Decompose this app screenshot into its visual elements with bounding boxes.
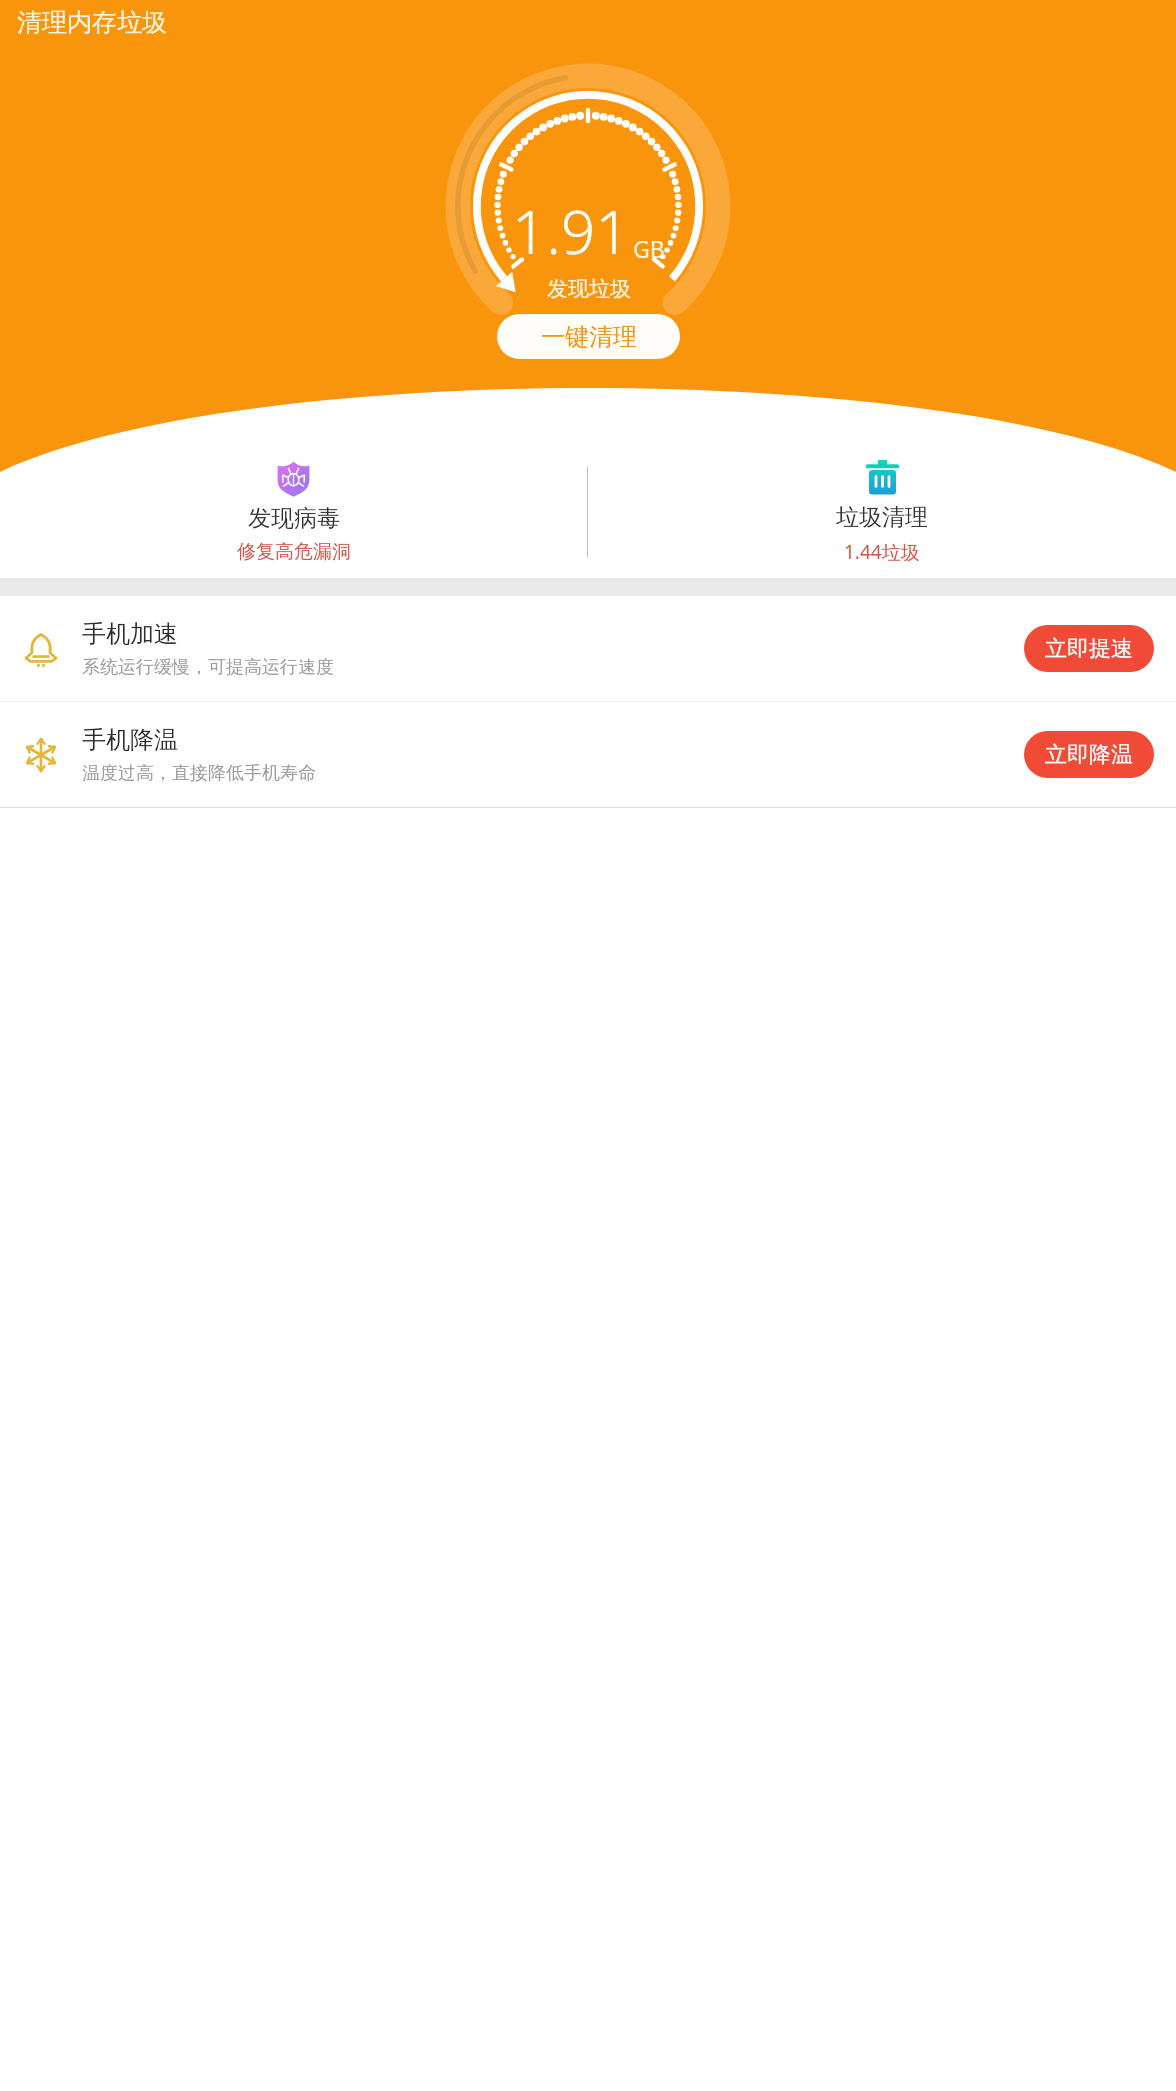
button[interactable]: Virus found (0, 459, 587, 564)
staticText: 立即降温 (1045, 741, 1133, 769)
staticText: 一键清理 (541, 322, 637, 352)
staticText: 修复高危漏洞 (237, 540, 351, 564)
staticText: 1.91 (512, 190, 630, 272)
staticText: 清理内存垃圾 (17, 7, 167, 38)
button[interactable]: Junk clean (588, 459, 1176, 564)
other: Junk clean (864, 459, 901, 496)
staticText: 立即提速 (1045, 635, 1133, 663)
button[interactable]: Phone boost (0, 596, 1176, 701)
other: Phone cooling (22, 736, 60, 774)
button[interactable]: 一键清理 (497, 314, 680, 359)
button[interactable]: 立即提速 (1024, 625, 1154, 672)
other: Virus found (275, 460, 312, 497)
staticText: GB (633, 233, 665, 264)
staticText: 温度过高，直接降低手机寿命 (82, 762, 316, 785)
staticText: 发现垃圾 (547, 276, 631, 302)
staticText: 垃圾清理 (836, 503, 928, 532)
staticText: 1.44垃圾 (844, 539, 920, 564)
staticText: 手机降温 (82, 725, 178, 755)
other: Phone boost (22, 630, 60, 668)
button[interactable]: Phone cooling (0, 702, 1176, 807)
staticText: 发现病毒 (248, 504, 340, 533)
staticText: 系统运行缓慢，可提高运行速度 (82, 656, 334, 679)
button[interactable]: 立即降温 (1024, 731, 1154, 778)
staticText: 手机加速 (82, 619, 178, 649)
